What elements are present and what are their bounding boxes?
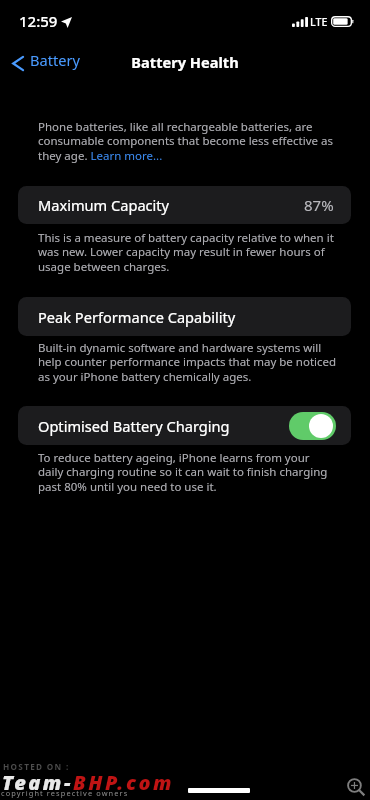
button[interactable]: Zoom in [345, 776, 367, 798]
staticText: Built-in dynamic software and hardware s… [38, 340, 338, 385]
staticText: To reduce battery ageing, iPhone learns … [38, 450, 330, 495]
button[interactable]: Peak Performance Capability [18, 297, 351, 336]
staticText: Peak Performance Capability [38, 307, 236, 327]
staticText: Battery [30, 50, 80, 70]
button[interactable]: Maximum Capacity [18, 186, 351, 224]
staticText: 12:59 [19, 11, 58, 31]
button[interactable]: Optimised Battery Charging [18, 406, 351, 445]
button[interactable]: Optimised Battery Charging toggle [289, 412, 336, 440]
staticText: HOSTED ON : [3, 761, 70, 772]
staticText: Team-BHP.com [2, 769, 175, 796]
staticText: Phone batteries, like all rechargeable b… [38, 119, 338, 164]
staticText: 87% [304, 195, 334, 215]
staticText: copyright respective owners [1, 788, 129, 798]
button[interactable]: Battery [7, 48, 85, 78]
staticText: This is a measure of battery capacity re… [38, 230, 338, 275]
staticText: Optimised Battery Charging [38, 416, 230, 436]
staticText: LTE [310, 15, 328, 29]
staticText: Maximum Capacity [38, 195, 170, 215]
staticText: Battery Health [131, 52, 239, 72]
